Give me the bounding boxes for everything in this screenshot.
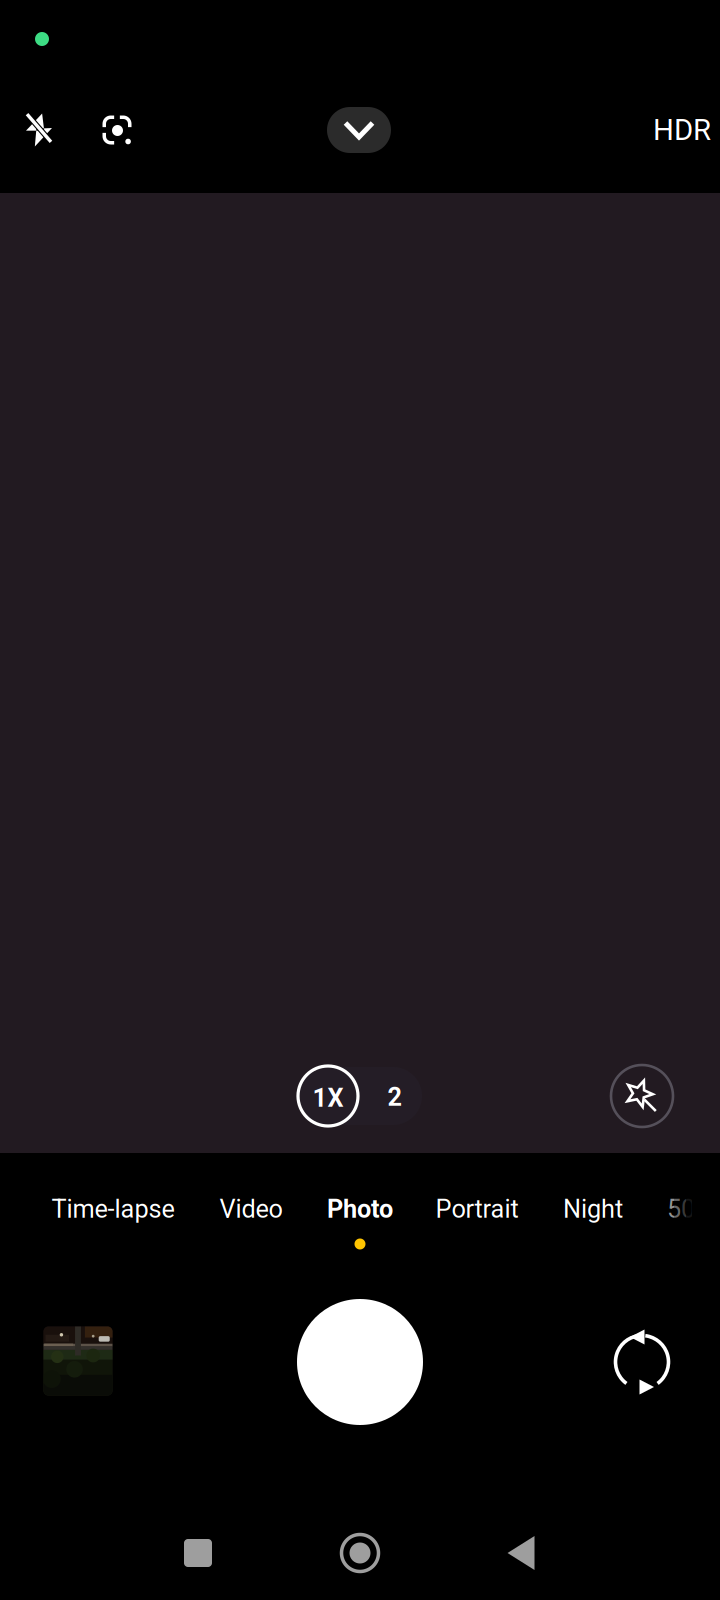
button[interactable]: Home: [312, 1516, 408, 1590]
button[interactable]: HDR: [640, 102, 720, 158]
button[interactable]: Time-lapse: [43, 1183, 183, 1265]
staticText: Time-lapse: [51, 1194, 174, 1224]
button[interactable]: Switch camera: [592, 1312, 692, 1412]
button[interactable]: Gallery: [28, 1311, 128, 1411]
staticText: Photo: [327, 1194, 393, 1224]
button[interactable]: Video: [181, 1183, 321, 1265]
button[interactable]: 2: [367, 1068, 423, 1126]
button[interactable]: 1X: [298, 1066, 358, 1126]
button[interactable]: Take photo: [285, 1287, 435, 1437]
staticText: 50M: [667, 1194, 717, 1224]
button[interactable]: More camera settings: [327, 107, 391, 153]
staticText: HDR: [653, 113, 711, 147]
staticText: Video: [219, 1194, 282, 1224]
button[interactable]: Back: [473, 1516, 569, 1590]
staticText: 2: [387, 1082, 402, 1112]
button[interactable]: Recent apps: [150, 1516, 246, 1590]
staticText: Night: [563, 1194, 623, 1224]
button[interactable]: 50M: [622, 1183, 720, 1265]
button[interactable]: Night: [523, 1183, 663, 1265]
button[interactable]: Portrait: [407, 1183, 547, 1265]
staticText: 1X: [312, 1083, 343, 1113]
button[interactable]: Effects: [611, 1065, 673, 1127]
button[interactable]: Photo: [290, 1183, 430, 1265]
staticText: Portrait: [435, 1194, 518, 1224]
button[interactable]: Flash off: [4, 95, 74, 165]
button[interactable]: Google Lens: [82, 95, 152, 165]
